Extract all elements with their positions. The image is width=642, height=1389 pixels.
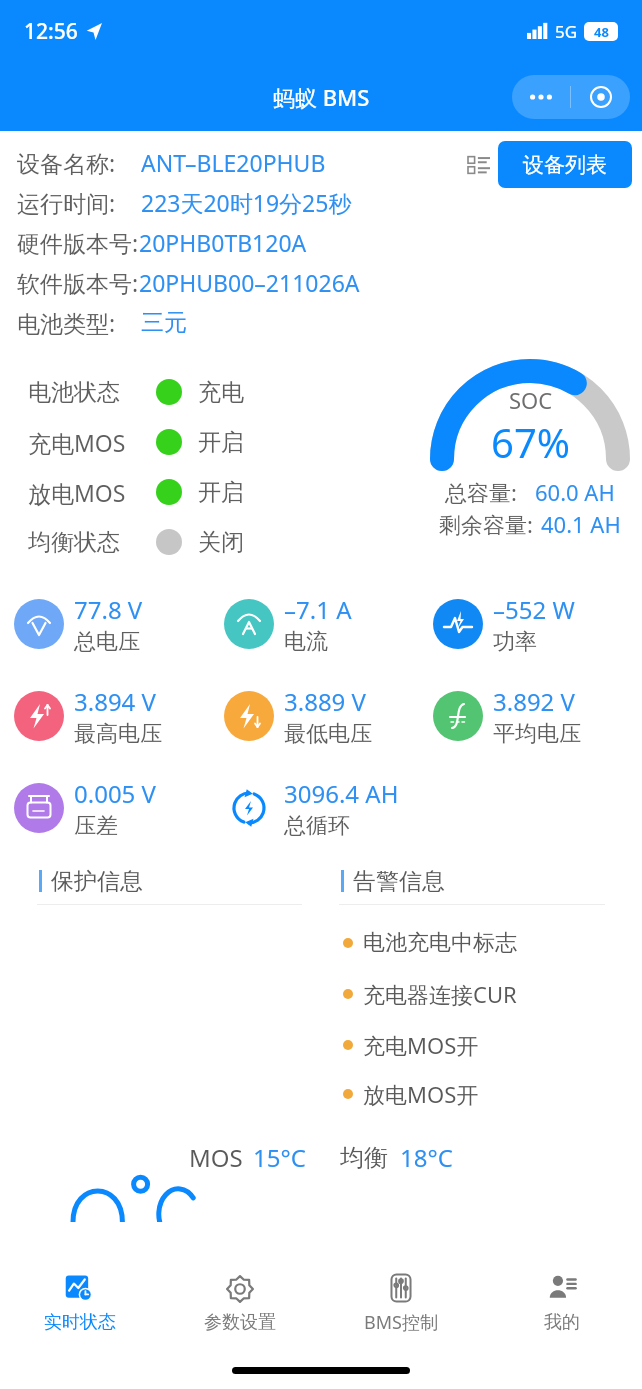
staticText: 功率 [493, 628, 537, 656]
staticText: 0.005 V [74, 777, 156, 810]
staticText: 运行时间: [17, 187, 116, 218]
staticText: 关闭 [198, 528, 244, 557]
staticText: 保护信息 [51, 867, 143, 896]
staticText: 48 [594, 23, 609, 41]
staticText: –552 W [493, 593, 575, 626]
staticText: 77.8 V [74, 593, 143, 626]
staticText: 40.1 AH [541, 509, 621, 539]
button[interactable]: BMS控制 [320, 1255, 481, 1351]
staticText: 放电MOS开 [363, 1079, 479, 1109]
staticText: 67% [491, 415, 570, 469]
staticText: 设备列表 [523, 152, 607, 178]
staticText: 总容量: [445, 477, 517, 507]
staticText: 设备名称: [17, 147, 116, 178]
staticText: 20PHUB00–211026A [139, 267, 360, 298]
staticText: 3.889 V [284, 685, 366, 718]
button[interactable]: 3096.4 AH [224, 762, 433, 854]
staticText: 电流 [284, 628, 328, 656]
staticText: 15°C [253, 1141, 306, 1174]
button[interactable]: –552 W [433, 578, 642, 670]
button[interactable]: 3.894 V [14, 670, 224, 762]
staticText: 3.892 V [493, 685, 575, 718]
staticText: 电池充电中标志 [363, 929, 517, 957]
staticText: 剩余容量: [439, 509, 533, 539]
staticText: 总电压 [74, 628, 140, 656]
button[interactable]: 我的 [481, 1255, 642, 1351]
staticText: 平均电压 [493, 720, 581, 748]
staticText: 最高电压 [74, 720, 162, 748]
button[interactable]: 实时状态 [0, 1255, 160, 1351]
button[interactable]: 保护信息 [27, 858, 312, 1118]
staticText: 12:56 [24, 17, 78, 46]
button[interactable]: 3.892 V [433, 670, 642, 762]
staticText: 20PHB0TB120A [139, 227, 307, 258]
staticText: 223天20时19分25秒 [141, 187, 352, 218]
staticText: 开启 [198, 428, 244, 457]
staticText: 均衡状态 [28, 528, 120, 557]
staticText: 充电MOS开 [363, 1030, 479, 1060]
staticText: 参数设置 [204, 1311, 276, 1334]
button[interactable]: 设备列表 [498, 141, 632, 188]
staticText: MOS [189, 1141, 243, 1174]
staticText: 告警信息 [353, 867, 445, 896]
staticText: SOC [509, 385, 553, 415]
staticText: 压差 [74, 812, 118, 840]
staticText: ANT–BLE20PHUB [141, 147, 326, 178]
staticText: 放电MOS [28, 477, 126, 508]
button[interactable]: 参数设置 [160, 1255, 320, 1351]
staticText: 充电MOS [28, 427, 126, 458]
staticText: 60.0 AH [535, 477, 615, 507]
staticText: 实时状态 [44, 1311, 116, 1334]
staticText: 最低电压 [284, 720, 372, 748]
staticText: 18°C [400, 1141, 453, 1174]
staticText: 电池状态 [28, 378, 120, 407]
staticText: 5G [555, 20, 578, 43]
button[interactable]: MOS [27, 1127, 615, 1222]
staticText: 3.894 V [74, 685, 156, 718]
button[interactable]: 77.8 V [14, 578, 224, 670]
staticText: 充电器连接CUR [363, 979, 517, 1009]
staticText: 硬件版本号: [17, 227, 139, 258]
button[interactable]: –7.1 A [224, 578, 433, 670]
button[interactable]: 告警信息 [329, 858, 615, 1118]
button[interactable]: List view [468, 154, 490, 176]
staticText: 三元 [141, 308, 187, 337]
button[interactable]: More [512, 75, 570, 119]
staticText: 电池类型: [17, 307, 116, 338]
staticText: 软件版本号: [17, 267, 139, 298]
staticText: BMS控制 [364, 1310, 438, 1335]
staticText: 充电 [198, 378, 244, 407]
button[interactable]: 0.005 V [14, 762, 224, 854]
staticText: 我的 [544, 1311, 580, 1334]
staticText: 开启 [198, 478, 244, 507]
staticText: 均衡 [340, 1143, 388, 1173]
button[interactable]: Target [571, 75, 630, 119]
staticText: 总循环 [284, 812, 350, 840]
button[interactable]: 3.889 V [224, 670, 433, 762]
staticText: –7.1 A [284, 593, 352, 626]
staticText: 3096.4 AH [284, 777, 399, 810]
staticText: 蚂蚁 BMS [273, 82, 370, 112]
